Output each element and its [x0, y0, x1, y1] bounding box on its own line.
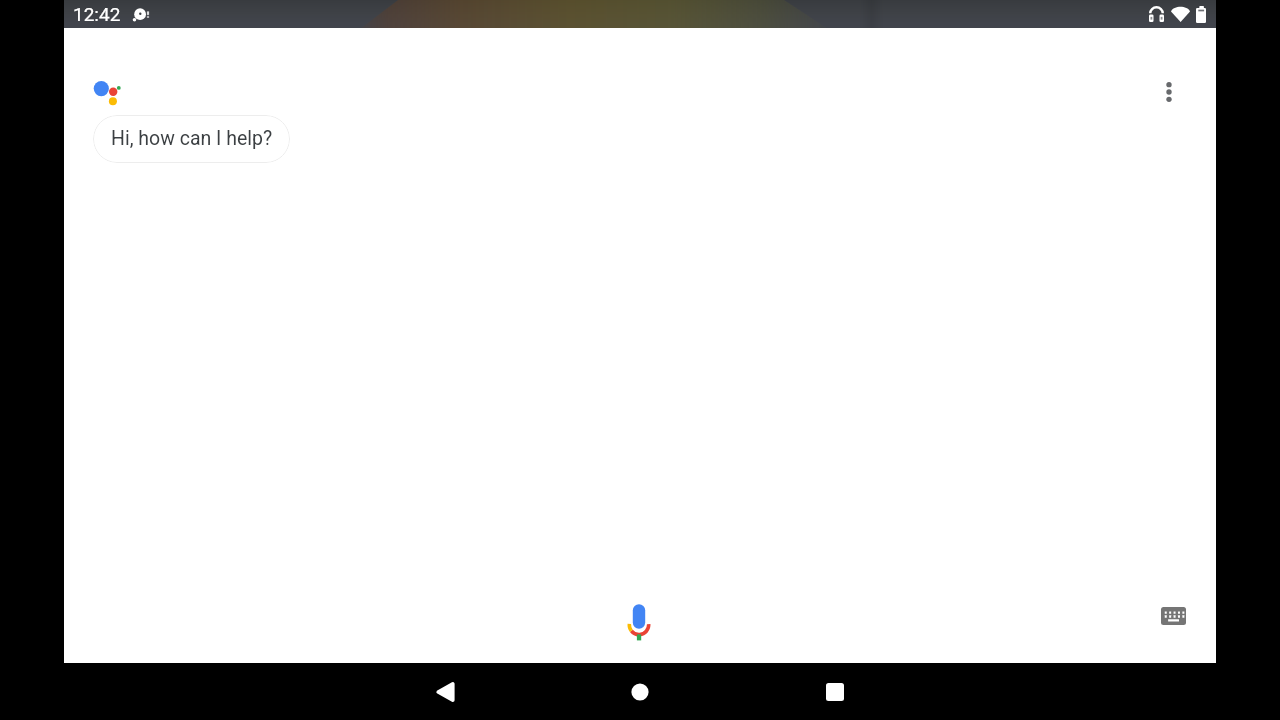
staticText: 12:42: [73, 3, 121, 25]
button[interactable]: Recent apps: [795, 663, 875, 720]
staticText: Hi, how can I help?: [111, 127, 273, 150]
button[interactable]: Keyboard: [1149, 592, 1197, 640]
button[interactable]: Back: [405, 663, 485, 720]
button[interactable]: More options: [1144, 67, 1193, 116]
button[interactable]: Hi, how can I help?: [93, 115, 290, 163]
button[interactable]: Voice input: [611, 592, 667, 652]
button[interactable]: Home: [600, 663, 680, 720]
